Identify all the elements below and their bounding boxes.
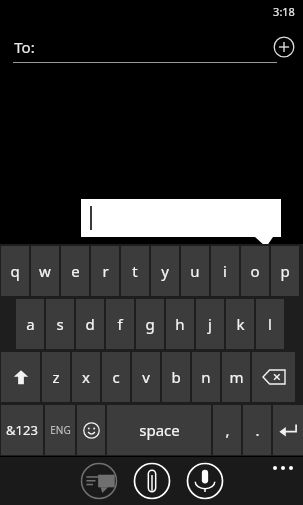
button[interactable]: s	[46, 299, 74, 349]
button[interactable]: ENG	[45, 405, 75, 455]
button[interactable]: h	[166, 299, 194, 349]
staticText: c	[112, 367, 120, 387]
staticText: i	[223, 261, 227, 281]
button[interactable]: Enter	[273, 405, 303, 455]
staticText: k	[236, 314, 245, 334]
staticText: m	[229, 367, 244, 387]
button[interactable]: f	[106, 299, 134, 349]
button[interactable]: Attach	[133, 462, 171, 500]
button[interactable]: Add recipient	[273, 36, 295, 58]
button[interactable]: c	[102, 352, 130, 402]
staticText: p	[280, 261, 290, 281]
staticText: y	[161, 261, 169, 281]
staticText: n	[201, 367, 211, 387]
staticText: v	[142, 367, 150, 387]
button[interactable]: y	[151, 246, 179, 296]
staticText: e	[71, 261, 80, 281]
staticText: b	[171, 367, 181, 387]
staticText: 3:18	[273, 4, 295, 19]
staticText: x	[82, 367, 90, 387]
button[interactable]: m	[222, 352, 250, 402]
staticText: d	[85, 314, 95, 334]
button[interactable]: e	[61, 246, 89, 296]
staticText: q	[10, 261, 20, 281]
staticText: z	[52, 367, 60, 387]
staticText: j	[208, 314, 212, 334]
button[interactable]: Backspace	[252, 352, 295, 402]
staticText: space	[139, 420, 180, 440]
staticText: a	[26, 314, 35, 334]
button[interactable]: Shift	[1, 352, 40, 402]
staticText: g	[145, 314, 155, 334]
button[interactable]: u	[181, 246, 209, 296]
button[interactable]: l	[256, 299, 284, 349]
button[interactable]: Emoji	[77, 405, 105, 455]
button[interactable]: .	[243, 405, 271, 455]
button[interactable]: More options	[273, 466, 293, 470]
button[interactable]: i	[211, 246, 239, 296]
button[interactable]: x	[72, 352, 100, 402]
staticText: h	[175, 314, 185, 334]
staticText: o	[250, 261, 260, 281]
button[interactable]: n	[192, 352, 220, 402]
button[interactable]: &123	[1, 405, 43, 455]
staticText: s	[56, 314, 64, 334]
staticText: r	[102, 261, 109, 281]
staticText: &123	[6, 421, 38, 439]
button[interactable]: v	[132, 352, 160, 402]
button[interactable]: z	[42, 352, 70, 402]
staticText: w	[39, 261, 51, 281]
button[interactable]: p	[271, 246, 299, 296]
button[interactable]: a	[16, 299, 44, 349]
button[interactable]: j	[196, 299, 224, 349]
button[interactable]: o	[241, 246, 269, 296]
button[interactable]: Voice input	[186, 462, 224, 500]
button[interactable]: d	[76, 299, 104, 349]
button[interactable]: t	[121, 246, 149, 296]
button[interactable]: Send	[80, 462, 118, 500]
staticText: f	[117, 314, 123, 334]
button[interactable]: k	[226, 299, 254, 349]
button[interactable]	[81, 199, 281, 237]
button[interactable]: q	[1, 246, 29, 296]
staticText: u	[190, 261, 200, 281]
staticText: l	[268, 314, 272, 334]
button[interactable]: w	[31, 246, 59, 296]
staticText: ENG	[50, 423, 71, 437]
staticText: To:	[14, 37, 35, 57]
button[interactable]: space	[107, 405, 211, 455]
button[interactable]: ,	[213, 405, 241, 455]
staticText: ,	[225, 420, 230, 440]
button[interactable]: r	[91, 246, 119, 296]
button[interactable]: g	[136, 299, 164, 349]
button[interactable]: To:	[0, 30, 303, 64]
staticText: .	[255, 420, 260, 440]
button[interactable]: b	[162, 352, 190, 402]
staticText: t	[132, 261, 138, 281]
